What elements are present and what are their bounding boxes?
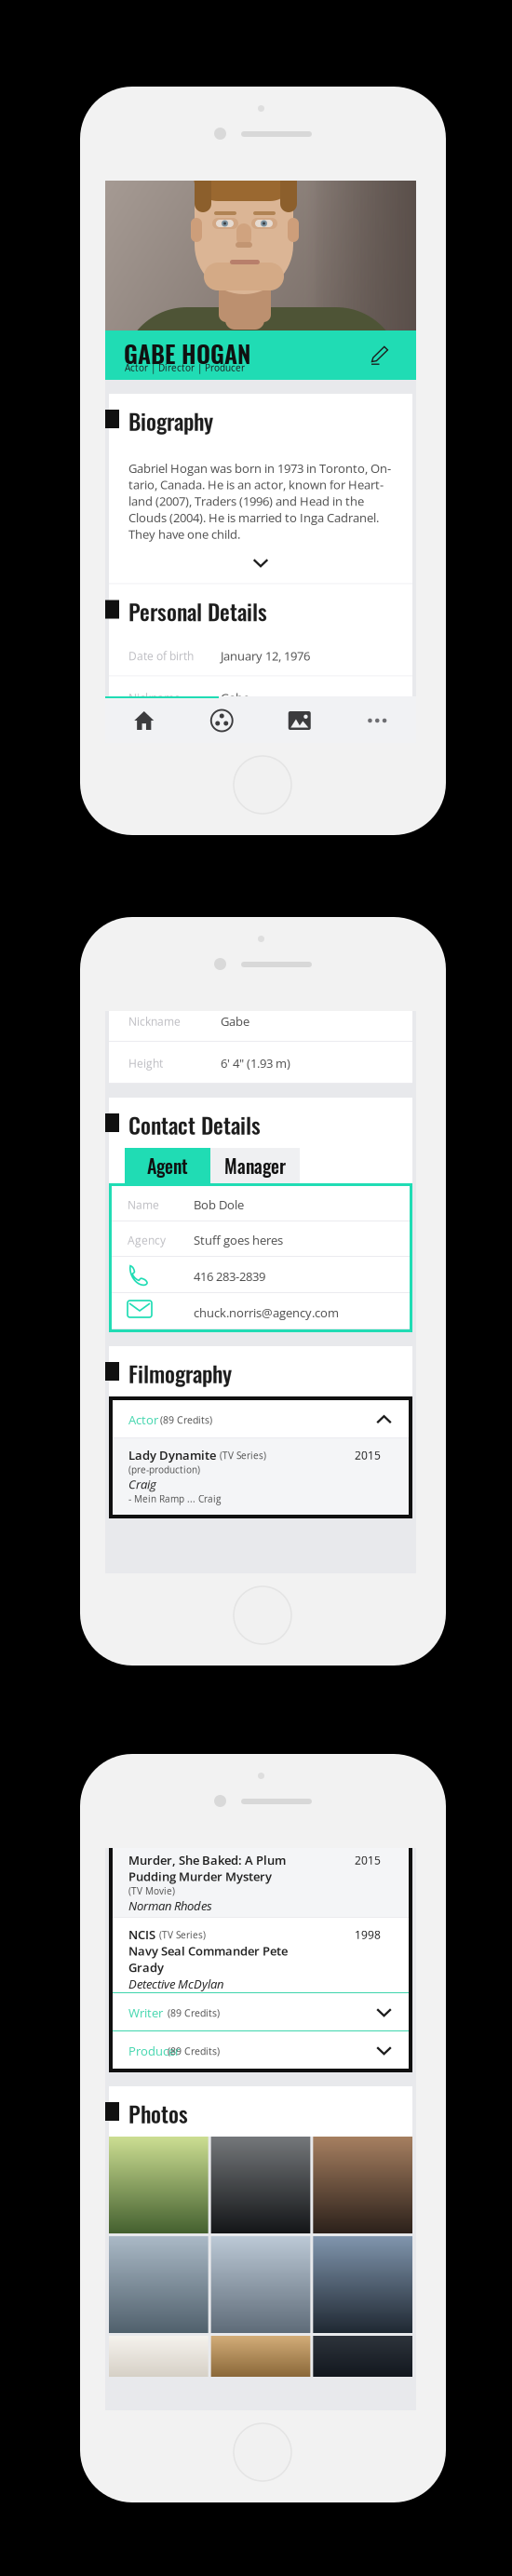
staticText: (pre-production) — [128, 1463, 200, 1476]
staticText: Gabe — [221, 1013, 249, 1029]
staticText: Producer — [128, 2043, 180, 2059]
staticText: 1998 — [355, 1927, 381, 1942]
staticText: Actor — [128, 1411, 158, 1428]
staticText: Craig — [128, 1476, 156, 1492]
staticText: (89 Credits) — [168, 2006, 220, 2020]
staticText: Norman Rhodes — [128, 1897, 212, 1914]
staticText: (TV Series) — [220, 1449, 266, 1462]
staticText: Biography — [128, 404, 213, 437]
button[interactable]: More — [338, 698, 416, 743]
staticText: Agent — [147, 1152, 188, 1179]
staticText: 416 283-2839 — [194, 1268, 265, 1284]
staticText: (TV Movie) — [128, 1885, 175, 1897]
staticText: Nickname — [128, 1014, 181, 1029]
button[interactable]: Agent — [125, 1148, 210, 1183]
staticText: Nickname — [128, 690, 181, 705]
staticText: 6' 4" (1.93 m) — [221, 1055, 290, 1071]
staticText: 2015 — [355, 1853, 381, 1868]
staticText: (TV Series) — [159, 1929, 206, 1941]
staticText: Stuff goes heres — [194, 1232, 283, 1248]
staticText: (89 Credits) — [160, 1413, 212, 1427]
staticText: Agency — [128, 1233, 166, 1248]
staticText: Filmography — [128, 1356, 232, 1390]
staticText: Photos — [128, 2097, 188, 2130]
button[interactable]: Photos — [261, 698, 338, 743]
button[interactable]: Manager — [210, 1148, 300, 1183]
button[interactable]: Edit profile — [363, 338, 397, 372]
staticText: Height — [128, 1056, 163, 1071]
staticText: Navy Seal Commander Pete Grady — [128, 1943, 288, 1976]
staticText: Detective McDylan — [128, 1976, 223, 1992]
staticText: Personal Details — [128, 594, 267, 628]
button[interactable]: Expand biography — [109, 542, 412, 583]
staticText: Gabe — [221, 689, 249, 706]
staticText: Actor | Director | Producer — [125, 361, 245, 374]
staticText: Writer — [128, 2004, 163, 2021]
staticText: (89 Credits) — [168, 2044, 220, 2058]
staticText: Lady Dynamite — [128, 1447, 216, 1463]
staticText: GABE HOGAN — [124, 335, 250, 371]
staticText: NCIS — [128, 1926, 155, 1943]
button[interactable]: Writer — [113, 1993, 409, 2030]
staticText: Contact Details — [128, 1108, 261, 1141]
button[interactable]: Filmography — [183, 698, 261, 743]
staticText: - Mein Ramp ... Craig — [128, 1492, 221, 1505]
button[interactable]: Producer — [113, 2031, 409, 2069]
staticText: Gabriel Hogan was born in 1973 in Toront… — [128, 460, 391, 542]
staticText: Manager — [224, 1152, 286, 1179]
staticText: Date of birth — [128, 648, 194, 664]
button[interactable]: Home — [105, 698, 183, 743]
staticText: 6' 4" (1.93 m) — [221, 731, 290, 748]
staticText: Bob Dole — [194, 1196, 244, 1213]
staticText: January 12, 1976 — [221, 647, 310, 664]
staticText: Name — [128, 1197, 159, 1212]
staticText: 2015 — [355, 1448, 381, 1463]
staticText: chuck.norris@agency.com — [194, 1304, 339, 1321]
staticText: Murder, She Baked: A Plum Pudding Murder… — [128, 1852, 286, 1885]
